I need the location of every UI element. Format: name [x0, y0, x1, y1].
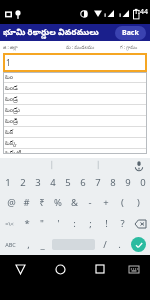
- staticText: ఒం: [5, 73, 14, 82]
- staticText: ఒండ్రు: [5, 106, 21, 115]
- staticText: ?: [120, 217, 125, 230]
- staticText: @: [7, 196, 16, 209]
- button[interactable]: ఒండ: [3, 83, 147, 93]
- button[interactable]: *: [19, 213, 34, 234]
- staticText: ;: [89, 217, 92, 230]
- staticText: ఒక: [5, 128, 14, 137]
- button[interactable]: Voice input: [133, 159, 145, 171]
- button[interactable]: 8: [105, 172, 120, 192]
- staticText: 1: [6, 57, 11, 68]
- button[interactable]: @: [4, 192, 19, 213]
- staticText: ABC: [5, 241, 16, 248]
- button[interactable]: Enter: [131, 237, 146, 252]
- button[interactable]: =\<: [0, 213, 19, 234]
- staticText: 3: [35, 176, 41, 189]
- button[interactable]: 1: [0, 172, 15, 192]
- staticText: &: [71, 196, 78, 209]
- staticText: ': [57, 217, 60, 230]
- staticText: గ : గ్రామం: [120, 44, 150, 51]
- button[interactable]: 6: [75, 172, 90, 192]
- staticText: ఒండ్రి: [5, 117, 18, 126]
- button[interactable]: _: [35, 234, 50, 255]
- staticText: _: [40, 238, 45, 251]
- button[interactable]: ): [130, 192, 146, 213]
- button[interactable]: Switch keyboard: [126, 261, 142, 277]
- staticText: ₹: [39, 196, 45, 209]
- staticText: ఒండ్ర: [5, 95, 18, 104]
- staticText: భూమి రికార్డుల వివరములు: [3, 26, 99, 39]
- staticText: *: [24, 217, 30, 230]
- button[interactable]: ?: [114, 213, 130, 234]
- staticText: ఒక్క: [5, 139, 17, 148]
- button[interactable]: ఒక్కటి: [3, 149, 147, 154]
- button[interactable]: Home: [52, 261, 68, 277]
- staticText: ,: [27, 238, 30, 251]
- button[interactable]: :: [66, 213, 82, 234]
- staticText: !: [105, 217, 108, 230]
- button[interactable]: 4: [45, 172, 60, 192]
- button[interactable]: !: [98, 213, 114, 234]
- button[interactable]: 5: [60, 172, 75, 192]
- button[interactable]: ఒక్క: [3, 138, 147, 148]
- button[interactable]: #: [19, 192, 34, 213]
- button[interactable]: ": [34, 213, 50, 234]
- button[interactable]: ఒండ్రు: [3, 105, 147, 115]
- button[interactable]: ,: [21, 234, 35, 255]
- button[interactable]: ': [50, 213, 66, 234]
- staticText: ఒక్కటి: [5, 149, 22, 154]
- staticText: ": [40, 217, 44, 230]
- staticText: 1: [5, 176, 11, 189]
- button[interactable]: ఒండ్ర: [3, 94, 147, 104]
- button[interactable]: -: [82, 192, 98, 213]
- button[interactable]: ఒక: [3, 127, 147, 137]
- button[interactable]: 1: [3, 53, 147, 72]
- staticText: 5: [65, 176, 71, 189]
- button[interactable]: &: [66, 192, 82, 213]
- button[interactable]: ABC: [0, 234, 21, 255]
- button[interactable]: /: [97, 234, 112, 255]
- button[interactable]: ఒండ్రి: [3, 116, 147, 126]
- staticText: 6: [80, 176, 86, 189]
- button[interactable]: 2: [15, 172, 30, 192]
- staticText: (: [121, 196, 124, 209]
- staticText: -: [88, 196, 92, 209]
- staticText: ): [137, 196, 140, 209]
- staticText: ఒండ: [5, 84, 18, 93]
- button[interactable]: 7: [90, 172, 105, 192]
- button[interactable]: 0: [135, 172, 150, 192]
- button[interactable]: ₹: [34, 192, 50, 213]
- staticText: #: [23, 196, 30, 209]
- button[interactable]: Backspace: [130, 213, 150, 234]
- button[interactable]: 3: [30, 172, 45, 192]
- button[interactable]: (: [114, 192, 130, 213]
- staticText: 1:44: [134, 7, 148, 17]
- button[interactable]: ;: [82, 213, 98, 234]
- staticText: Back: [122, 28, 139, 38]
- staticText: /: [103, 238, 107, 251]
- staticText: 8: [110, 176, 116, 189]
- staticText: జి : జిల్లా: [3, 44, 63, 51]
- staticText: 4: [50, 176, 56, 189]
- button[interactable]: +: [98, 192, 114, 213]
- staticText: 9: [125, 176, 131, 189]
- staticText: +: [103, 196, 109, 209]
- button[interactable]: Back: [115, 26, 146, 40]
- button[interactable]: Recents: [92, 261, 108, 277]
- staticText: 7: [95, 176, 101, 189]
- button[interactable]: 9: [120, 172, 135, 192]
- staticText: %: [54, 196, 62, 209]
- staticText: :: [73, 217, 76, 230]
- button[interactable]: %: [50, 192, 66, 213]
- staticText: 0: [140, 176, 146, 189]
- staticText: =\<: [5, 220, 14, 227]
- button[interactable]: .: [112, 234, 127, 255]
- staticText: 2: [20, 176, 26, 189]
- staticText: .: [118, 238, 121, 251]
- button[interactable]: Hide keyboard: [12, 261, 28, 277]
- button[interactable]: ఒం: [3, 72, 147, 82]
- staticText: మ : మండలము: [66, 44, 117, 51]
